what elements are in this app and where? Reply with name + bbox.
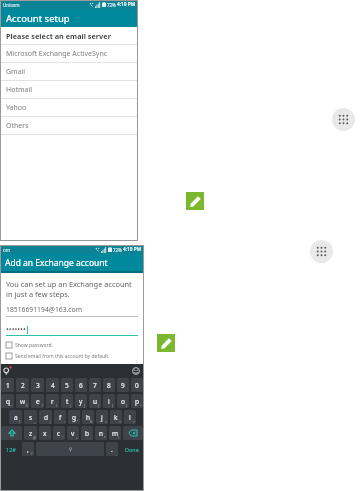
button[interactable]: 6 bbox=[75, 378, 87, 392]
staticText: p bbox=[135, 397, 139, 406]
button[interactable]: Send email from this account by default. bbox=[6, 351, 138, 361]
button[interactable]: n bbox=[95, 426, 107, 440]
button[interactable]: f bbox=[54, 410, 66, 424]
button[interactable]: Delete bbox=[123, 426, 143, 440]
staticText: < bbox=[119, 420, 121, 424]
staticText: t bbox=[66, 397, 69, 406]
staticText: d bbox=[44, 413, 48, 422]
button[interactable]: 0 bbox=[131, 378, 143, 392]
button[interactable]: e bbox=[31, 394, 44, 408]
staticText: / bbox=[118, 436, 120, 440]
staticText: b bbox=[85, 429, 89, 438]
button[interactable]: , bbox=[22, 442, 34, 456]
staticText: l bbox=[129, 413, 131, 422]
button[interactable]: k bbox=[110, 410, 122, 424]
button[interactable]: 7 bbox=[89, 378, 101, 392]
button[interactable]: 9 bbox=[117, 378, 129, 392]
staticText: e bbox=[36, 397, 40, 406]
button[interactable]: d bbox=[39, 410, 52, 424]
staticText: 1 bbox=[6, 381, 10, 390]
button[interactable]: Apps bbox=[332, 108, 355, 131]
button[interactable]: 8 bbox=[103, 378, 115, 392]
button[interactable]: Shift bbox=[1, 426, 22, 440]
button[interactable]: p bbox=[131, 394, 143, 408]
staticText: | bbox=[70, 404, 72, 408]
button[interactable]: o bbox=[117, 394, 129, 408]
button[interactable]: . bbox=[106, 442, 118, 456]
button[interactable]: Others bbox=[0, 117, 138, 134]
button[interactable]: w bbox=[16, 394, 29, 408]
button[interactable]: m bbox=[109, 426, 121, 440]
staticText: 6 bbox=[79, 381, 83, 390]
button[interactable]: Microsoft Exchange ActiveSync bbox=[0, 45, 138, 62]
button[interactable]: i bbox=[103, 394, 115, 408]
staticText: f bbox=[59, 413, 62, 422]
button[interactable]: j bbox=[96, 410, 108, 424]
button[interactable]: Gmail bbox=[0, 63, 138, 80]
staticText: x bbox=[43, 429, 47, 438]
staticText: ; bbox=[50, 420, 51, 424]
staticText: w bbox=[20, 397, 26, 406]
button[interactable]: 1 bbox=[1, 378, 14, 392]
staticText: Add an Exchange account bbox=[5, 257, 108, 269]
button[interactable]: l bbox=[124, 410, 136, 424]
staticText: 4:10 PM bbox=[123, 246, 142, 253]
staticText: 7 bbox=[93, 381, 97, 390]
staticText: “ bbox=[62, 436, 64, 440]
staticText: a bbox=[14, 413, 18, 422]
staticText: > bbox=[133, 420, 135, 424]
staticText: Please select an email server bbox=[6, 31, 111, 41]
staticText: Done bbox=[125, 446, 139, 453]
button[interactable]: s bbox=[24, 410, 37, 424]
staticText: ! bbox=[42, 404, 43, 408]
button[interactable]: Apps bbox=[310, 240, 333, 263]
staticText: - bbox=[90, 436, 92, 440]
button[interactable]: x bbox=[39, 426, 51, 440]
button[interactable]: Yahoo bbox=[0, 99, 138, 116]
button[interactable]: h bbox=[82, 410, 94, 424]
button[interactable]: Emoji bbox=[132, 367, 140, 375]
button[interactable]: 2 bbox=[16, 378, 29, 392]
button[interactable]: 4 bbox=[46, 378, 59, 392]
staticText: [ bbox=[84, 404, 86, 408]
button[interactable]: Input method bbox=[3, 366, 12, 375]
staticText: 0 bbox=[135, 381, 139, 390]
staticText: 18516691194@163.com bbox=[6, 305, 83, 314]
staticText: g bbox=[72, 413, 76, 422]
button[interactable]: t bbox=[61, 394, 73, 408]
staticText: 3 bbox=[36, 381, 40, 390]
staticText: 4 bbox=[51, 381, 55, 390]
button[interactable]: r bbox=[46, 394, 59, 408]
staticText: 72% bbox=[107, 2, 116, 8]
button[interactable]: v bbox=[67, 426, 79, 440]
button[interactable]: a bbox=[9, 410, 22, 424]
button[interactable]: g bbox=[68, 410, 80, 424]
button[interactable]: q bbox=[1, 394, 14, 408]
staticText: i bbox=[108, 397, 110, 406]
button[interactable]: Hotmail bbox=[0, 81, 138, 98]
staticText: Yahoo bbox=[6, 103, 27, 113]
button[interactable]: 3 bbox=[31, 378, 44, 392]
button[interactable]: Space bbox=[36, 442, 104, 456]
button[interactable]: z bbox=[24, 426, 37, 440]
button[interactable]: Show password. bbox=[6, 340, 138, 350]
button[interactable]: Compose bbox=[157, 334, 175, 352]
button[interactable]: y bbox=[75, 394, 87, 408]
staticText: 4:10 PM bbox=[117, 1, 136, 8]
button[interactable]: u bbox=[89, 394, 101, 408]
button[interactable]: 12# bbox=[1, 442, 20, 456]
staticText: { bbox=[112, 404, 114, 408]
staticText: You can set up an Exchange account in ju… bbox=[6, 279, 132, 299]
staticText: ~ bbox=[11, 404, 13, 408]
staticText: v bbox=[71, 429, 75, 438]
button[interactable]: Done bbox=[120, 442, 143, 456]
button[interactable]: Please select an email server bbox=[0, 27, 138, 44]
button[interactable]: Compose bbox=[186, 192, 204, 210]
button[interactable]: 5 bbox=[61, 378, 73, 392]
staticText: \ bbox=[56, 404, 58, 408]
staticText: s bbox=[29, 413, 33, 422]
button[interactable]: b bbox=[81, 426, 93, 440]
staticText: ••••••• bbox=[6, 324, 26, 334]
button[interactable]: c bbox=[53, 426, 65, 440]
staticText: r bbox=[51, 397, 54, 406]
